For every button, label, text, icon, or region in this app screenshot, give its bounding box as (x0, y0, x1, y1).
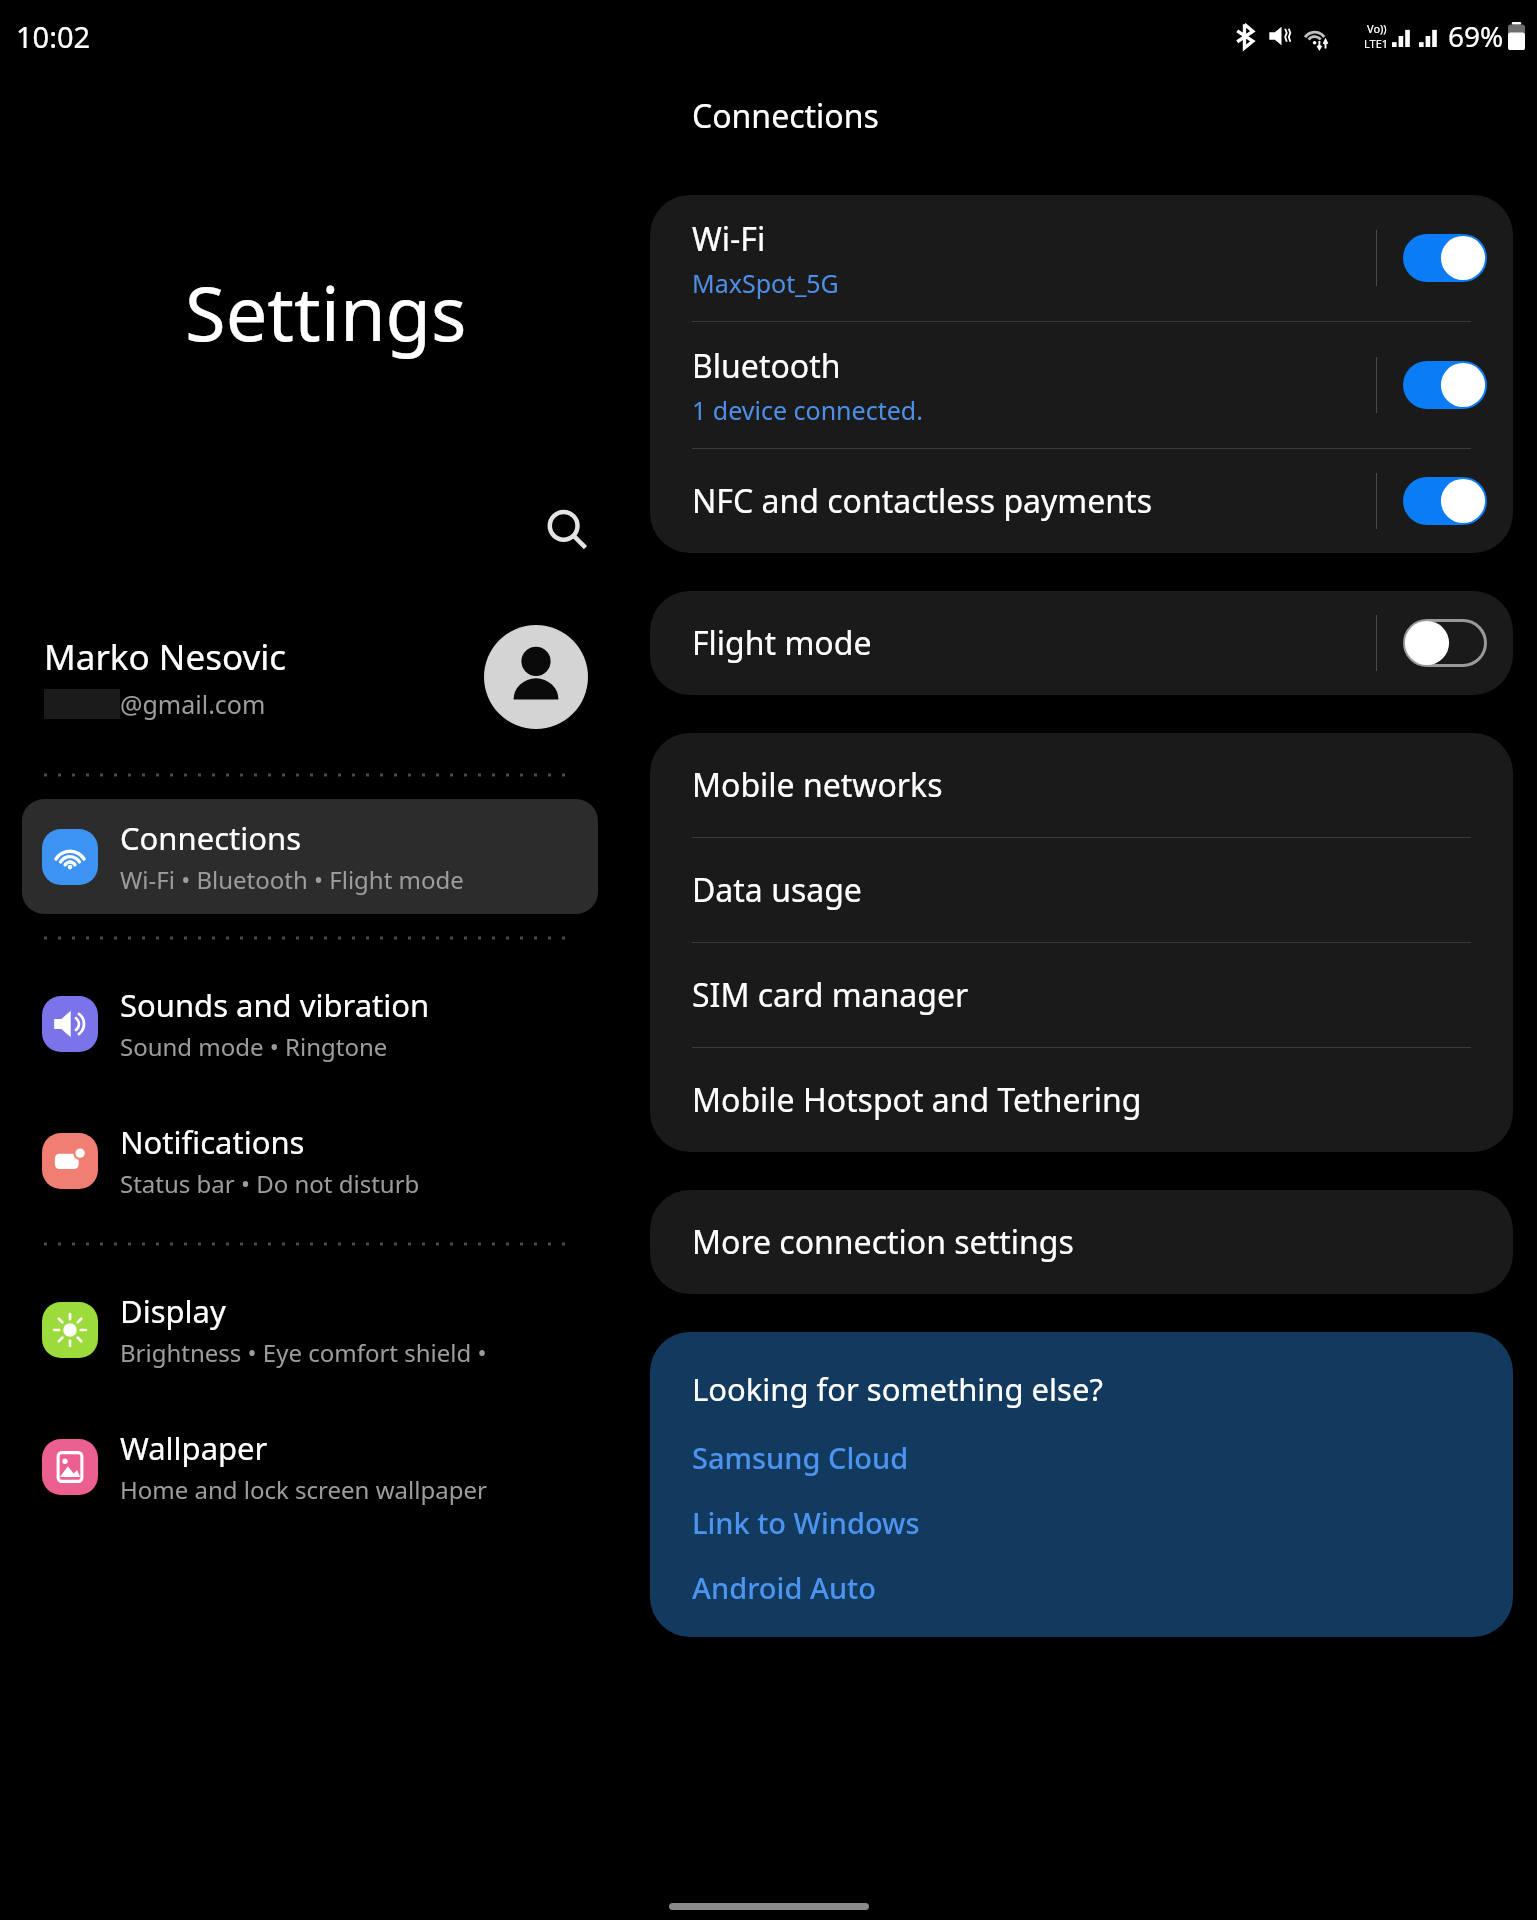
staticText: More connection settings (692, 1220, 1074, 1264)
button[interactable]: Flight mode (650, 591, 1513, 695)
button[interactable]: Search (535, 498, 599, 562)
staticText: Notifications (120, 1121, 305, 1163)
button[interactable]: Connections (22, 799, 598, 914)
staticText: Status bar • Do not disturb (120, 1167, 420, 1200)
staticText: Settings (185, 262, 467, 363)
button[interactable]: Wi-Fi (650, 195, 1513, 321)
button[interactable]: NFC and contactless payments (650, 449, 1513, 553)
staticText: Sounds and vibration (120, 984, 430, 1026)
staticText: Flight mode (692, 621, 872, 665)
button[interactable]: Display (22, 1272, 598, 1387)
staticText: Brightness • Eye comfort shield • Naviga… (120, 1336, 584, 1369)
button[interactable]: SIM card manager (650, 943, 1513, 1047)
staticText: Wi-Fi (692, 217, 766, 261)
button[interactable]: Android Auto (692, 1568, 876, 1607)
button[interactable]: Sounds and vibration (22, 966, 598, 1081)
button[interactable]: Notifications (22, 1103, 598, 1218)
staticText: Data usage (692, 868, 862, 912)
button[interactable]: Marko Nesovic (0, 617, 620, 737)
staticText: Vo)) (1367, 21, 1387, 36)
button[interactable]: Mobile Hotspot and Tethering (650, 1048, 1513, 1152)
staticText: Wallpaper (120, 1427, 268, 1469)
button[interactable]: NFC and contactless payments toggle (1403, 477, 1487, 525)
button[interactable]: Data usage (650, 838, 1513, 942)
staticText: Connections (120, 817, 301, 859)
staticText: SIM card manager (692, 973, 969, 1017)
staticText: 1 device connected. (692, 393, 923, 427)
staticText: Display (120, 1290, 226, 1332)
button[interactable]: Flight mode toggle (1403, 619, 1487, 667)
button[interactable]: Mobile networks (650, 733, 1513, 837)
button[interactable]: Wi-Fi toggle (1403, 234, 1487, 282)
button[interactable]: More connection settings (650, 1190, 1513, 1294)
button[interactable]: Wallpaper (22, 1409, 598, 1524)
staticText: Home and lock screen wallpaper (120, 1473, 487, 1506)
staticText: Bluetooth (692, 344, 841, 388)
staticText: 69% (1448, 17, 1504, 55)
button[interactable]: Samsung Cloud (692, 1438, 909, 1477)
staticText: NFC and contactless payments (692, 479, 1152, 523)
button[interactable]: Link to Windows (692, 1503, 920, 1542)
staticText: Looking for something else? (692, 1368, 1103, 1410)
button[interactable]: Bluetooth toggle (1403, 361, 1487, 409)
staticText: Connections (692, 94, 879, 138)
staticText: MaxSpot_5G (692, 266, 839, 300)
staticText: 10:02 (16, 17, 91, 56)
staticText: Mobile Hotspot and Tethering (692, 1078, 1142, 1122)
staticText: Sound mode • Ringtone (120, 1030, 388, 1063)
staticText: LTE1 (1364, 36, 1389, 51)
staticText: Mobile networks (692, 763, 943, 807)
staticText: Marko Nesovic (44, 633, 286, 681)
staticText: @gmail.com (120, 687, 266, 721)
staticText: Wi-Fi • Bluetooth • Flight mode (120, 863, 464, 896)
button[interactable]: Bluetooth (650, 322, 1513, 448)
